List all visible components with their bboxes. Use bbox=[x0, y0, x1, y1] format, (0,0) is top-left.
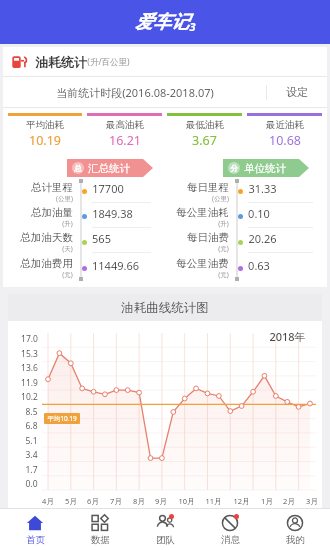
staticText: 平均油耗 bbox=[26, 119, 64, 131]
staticText: 我的 bbox=[286, 534, 305, 546]
button[interactable]: 当前统计时段(2016.08-2018.07) bbox=[3, 77, 266, 107]
staticText: 10.2 bbox=[21, 391, 38, 403]
button[interactable]: 首页 bbox=[5, 509, 65, 550]
staticText: 6.8 bbox=[25, 420, 38, 432]
staticText: 3月 bbox=[306, 496, 318, 506]
staticText: 最低油耗 bbox=[186, 119, 224, 131]
staticText: 17.0 bbox=[21, 333, 38, 345]
staticText: 首页 bbox=[26, 534, 45, 546]
staticText: 7月 bbox=[110, 496, 122, 506]
button[interactable]: 每公里油费 bbox=[165, 255, 327, 281]
staticText: (升/百公里) bbox=[87, 56, 130, 68]
staticText: 油耗统计 bbox=[35, 54, 87, 70]
button[interactable]: 消息 bbox=[200, 509, 260, 550]
button[interactable]: 最近油耗 bbox=[247, 113, 322, 152]
staticText: 消息 bbox=[221, 534, 240, 546]
staticText: (元) bbox=[218, 270, 229, 279]
staticText: (升) bbox=[62, 219, 73, 228]
staticText: (升) bbox=[218, 219, 229, 228]
staticText: 6月 bbox=[87, 496, 99, 506]
staticText: 2018年 bbox=[269, 329, 306, 344]
button[interactable]: 分 bbox=[223, 159, 309, 177]
staticText: (公里) bbox=[56, 194, 73, 203]
staticText: 11.9 bbox=[21, 377, 38, 389]
staticText: 8月 bbox=[133, 496, 145, 506]
staticText: 13.6 bbox=[21, 362, 38, 374]
staticText: 数据 bbox=[91, 534, 110, 546]
staticText: 总计里程 bbox=[31, 181, 73, 194]
staticText: 2月 bbox=[283, 496, 295, 506]
staticText: 20.26 bbox=[248, 231, 277, 246]
button[interactable]: 我的 bbox=[265, 509, 325, 550]
staticText: (公里) bbox=[212, 194, 229, 203]
staticText: 总 bbox=[74, 164, 82, 173]
staticText: 3 bbox=[189, 19, 196, 34]
staticText: 1849.38 bbox=[92, 206, 133, 221]
button[interactable]: 总计里程 bbox=[3, 179, 165, 204]
staticText: 总加油天数 bbox=[20, 231, 73, 244]
staticText: 0.10 bbox=[248, 206, 270, 221]
staticText: 8.5 bbox=[25, 406, 38, 418]
staticText: 0.63 bbox=[248, 258, 270, 273]
staticText: (天) bbox=[62, 244, 73, 253]
button[interactable]: 总加油费用 bbox=[3, 255, 165, 281]
staticText: 31.33 bbox=[248, 181, 277, 196]
staticText: 最高油耗 bbox=[106, 119, 144, 131]
staticText: 1.7 bbox=[25, 464, 38, 476]
button[interactable]: 总加油量 bbox=[3, 204, 165, 229]
staticText: 每公里油费 bbox=[176, 257, 229, 270]
button[interactable]: 总加油天数 bbox=[3, 229, 165, 255]
staticText: 汇总统计 bbox=[88, 162, 130, 175]
button[interactable]: 每日油费 bbox=[165, 229, 327, 255]
staticText: 单位统计 bbox=[244, 162, 286, 175]
staticText: (元) bbox=[62, 270, 73, 279]
staticText: 11449.66 bbox=[92, 258, 139, 273]
staticText: 爱车记 bbox=[135, 11, 189, 34]
staticText: 当前统计时段(2016.08-2018.07) bbox=[56, 85, 214, 100]
staticText: 17700 bbox=[92, 181, 124, 196]
staticText: 5.1 bbox=[25, 435, 38, 447]
button[interactable]: 每公里油耗 bbox=[165, 204, 327, 229]
staticText: 0.0 bbox=[25, 478, 38, 490]
staticText: (元) bbox=[218, 244, 229, 253]
button[interactable]: 平均油耗 bbox=[8, 113, 82, 152]
staticText: 5月 bbox=[65, 496, 77, 506]
staticText: 10月 bbox=[178, 496, 195, 506]
staticText: 每日油费 bbox=[187, 231, 229, 244]
staticText: 565 bbox=[92, 231, 111, 246]
staticText: 15.3 bbox=[21, 348, 38, 360]
button[interactable]: 数据 bbox=[70, 509, 130, 550]
staticText: 分 bbox=[230, 164, 238, 173]
staticText: 3.67 bbox=[192, 132, 217, 149]
staticText: 12月 bbox=[233, 496, 250, 506]
staticText: 总加油量 bbox=[31, 206, 73, 219]
staticText: 9月 bbox=[155, 496, 167, 506]
staticText: 最近油耗 bbox=[266, 119, 304, 131]
staticText: 10.19 bbox=[29, 132, 61, 149]
staticText: 10.68 bbox=[269, 132, 301, 149]
staticText: 平均10.19 bbox=[47, 414, 77, 423]
staticText: 1月 bbox=[261, 496, 273, 506]
button[interactable]: 最高油耗 bbox=[87, 113, 162, 152]
staticText: 11月 bbox=[205, 496, 222, 506]
staticText: 每公里油耗 bbox=[176, 206, 229, 219]
staticText: 4月 bbox=[42, 496, 54, 506]
staticText: 设定 bbox=[286, 85, 308, 99]
staticText: 每日里程 bbox=[187, 181, 229, 194]
button[interactable]: 设定 bbox=[267, 77, 327, 107]
button[interactable]: 团队 bbox=[135, 509, 195, 550]
staticText: 团队 bbox=[156, 534, 175, 546]
button[interactable]: 每日里程 bbox=[165, 179, 327, 204]
staticText: 总加油费用 bbox=[20, 257, 73, 270]
staticText: 油耗曲线统计图 bbox=[121, 300, 209, 316]
staticText: 3.4 bbox=[25, 449, 38, 461]
staticText: 16.21 bbox=[109, 132, 141, 149]
button[interactable]: 总 bbox=[67, 159, 153, 177]
button[interactable]: 最低油耗 bbox=[167, 113, 242, 152]
